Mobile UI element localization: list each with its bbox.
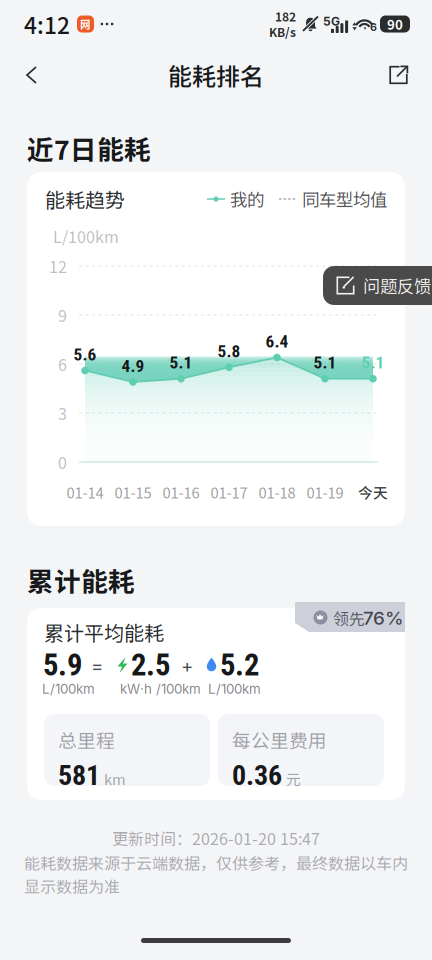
staticText: 01-17 [210, 481, 247, 503]
staticText: 4:12 [24, 8, 70, 40]
staticText: 6 [58, 352, 67, 376]
staticText: 5.2 [220, 647, 259, 683]
staticText: 12 [49, 254, 67, 278]
staticText: 我的 [230, 186, 264, 212]
staticText: 能耗趋势 [45, 184, 125, 213]
staticText: L/100km [42, 681, 95, 697]
staticText: 4.9 [121, 356, 144, 376]
staticText: 每公里费用 [232, 726, 327, 753]
staticText: 3 [58, 401, 67, 425]
staticText: 182 [275, 8, 296, 25]
button[interactable]: 分享 [375, 51, 422, 98]
staticText: L/100km [208, 681, 261, 697]
staticText: 5.9 [43, 647, 82, 683]
staticText: 76% [363, 607, 404, 629]
staticText: kW·h /100km [120, 681, 201, 697]
staticText: 01-18 [258, 481, 295, 503]
staticText: 更新时间：2026-01-20 15:47 [112, 826, 320, 850]
staticText: 5.6 [73, 344, 96, 365]
staticText: 累计能耗 [27, 561, 135, 599]
staticText: 能耗数据来源于云端数据，仅供参考，最终数据以车内显示数据为准 [24, 851, 408, 897]
staticText: 能耗排名 [168, 58, 264, 92]
staticText: 问题反馈 [363, 273, 431, 298]
staticText: = [91, 655, 103, 677]
staticText: 网 [80, 16, 91, 32]
staticText: 01-19 [306, 481, 343, 503]
button[interactable]: 返回 [10, 51, 53, 99]
staticText: 01-16 [162, 481, 199, 503]
staticText: 01-15 [114, 481, 151, 503]
staticText: L/100km [53, 224, 119, 248]
staticText: 0 [58, 450, 67, 474]
staticText: 近7日能耗 [27, 129, 151, 167]
staticText: 同车型均值 [302, 186, 387, 212]
staticText: KB/s [269, 23, 296, 40]
staticText: 6 [370, 20, 377, 33]
staticText: 总里程 [58, 726, 115, 753]
staticText: 领先 [333, 606, 365, 630]
staticText: 90 [387, 14, 403, 34]
staticText: 5.1 [169, 352, 192, 373]
staticText: 2.5 [131, 647, 170, 683]
staticText: 01-14 [66, 481, 103, 503]
staticText: 6.4 [265, 331, 288, 352]
staticText: 累计平均能耗 [44, 617, 164, 646]
staticText: 5.1 [361, 352, 384, 373]
staticText: 5.1 [313, 352, 336, 373]
staticText: 0.36 [232, 759, 282, 792]
button[interactable]: 问题反馈 [323, 266, 432, 305]
staticText: 5G [323, 14, 340, 28]
staticText: 5.8 [217, 341, 240, 361]
staticText: 9 [58, 303, 67, 327]
staticText: 今天 [358, 481, 388, 503]
staticText: + [181, 655, 193, 677]
staticText: 元 [286, 768, 301, 789]
staticText: 581 [58, 759, 100, 792]
staticText: km [104, 768, 126, 789]
